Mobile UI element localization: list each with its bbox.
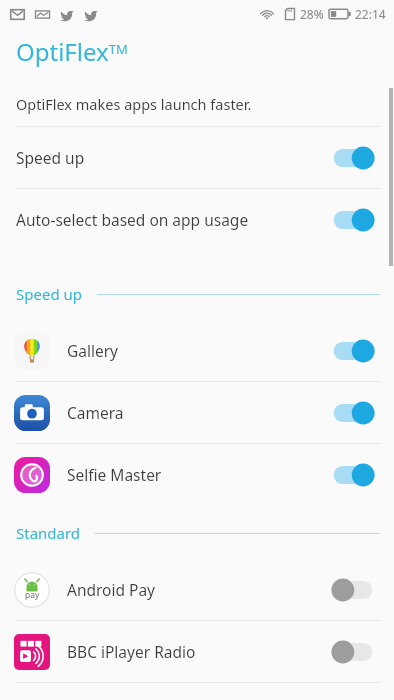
button[interactable]: Disabled [330, 577, 376, 603]
staticText: BBC iPlayer Radio [67, 641, 330, 662]
staticText: 28% [300, 6, 324, 22]
staticText: Speed up [16, 147, 330, 168]
staticText: Gallery [67, 340, 330, 361]
staticText: Speed up [16, 284, 83, 304]
button[interactable]: Enabled [330, 462, 376, 488]
staticText: Camera [67, 402, 330, 423]
button[interactable]: Enabled [330, 400, 376, 426]
button[interactable]: Enabled [330, 145, 376, 171]
button[interactable]: Disabled [330, 639, 376, 665]
staticText: Auto-select based on app usage [16, 209, 330, 230]
button[interactable]: pay [0, 559, 394, 620]
button[interactable]: Enabled [330, 338, 376, 364]
button[interactable]: BBC iPlayer Radio [0, 621, 394, 682]
staticText: Android Pay [67, 579, 330, 600]
button[interactable]: Auto-select based on app usage [0, 189, 394, 250]
button[interactable]: Selfie Master [0, 444, 394, 505]
staticText: Selfie Master [67, 464, 330, 485]
staticText: OptiFlexTM [16, 35, 128, 68]
button[interactable]: Speed up [0, 127, 394, 188]
staticText: pay [25, 589, 40, 601]
staticText: 22:14 [355, 6, 386, 22]
staticText: OptiFlex makes apps launch faster. [16, 94, 252, 114]
button[interactable]: Camera [0, 382, 394, 443]
staticText: Standard [16, 523, 81, 543]
button[interactable]: Enabled [330, 207, 376, 233]
button[interactable]: Gallery [0, 320, 394, 381]
